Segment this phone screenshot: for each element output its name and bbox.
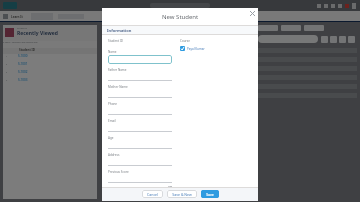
staticText: 1 <box>6 55 8 58</box>
staticText: 9 items • Updated a few seconds ago <box>3 41 38 44</box>
staticText: Information <box>107 28 132 33</box>
button[interactable] <box>108 175 172 183</box>
staticText: 4 <box>6 79 8 82</box>
button[interactable] <box>108 158 172 166</box>
button[interactable] <box>108 107 172 115</box>
staticText: New Student <box>162 13 199 21</box>
button[interactable]: Save <box>201 190 219 198</box>
staticText: Course <box>180 39 190 43</box>
button[interactable] <box>108 55 172 64</box>
staticText: Student ID <box>108 39 124 43</box>
staticText: Student ID <box>19 48 35 52</box>
button[interactable] <box>108 73 172 81</box>
staticText: Name <box>108 50 117 54</box>
button[interactable] <box>108 90 172 98</box>
staticText: Father Name <box>108 68 127 72</box>
staticText: Address <box>108 153 120 157</box>
staticText: Age <box>108 136 114 140</box>
button[interactable] <box>108 124 172 132</box>
staticText: S-1003 <box>18 78 28 82</box>
staticText: Previous Score <box>108 170 129 174</box>
staticText: STUDENTS <box>17 27 27 30</box>
button[interactable]: Close <box>250 11 255 16</box>
button[interactable]: Cancel <box>142 190 163 198</box>
button[interactable] <box>108 141 172 149</box>
staticText: S-1002 <box>18 70 28 74</box>
staticText: Email <box>108 119 116 123</box>
staticText: Learn It <box>11 15 23 19</box>
staticText: Save & New <box>172 192 192 197</box>
staticText: Cancel <box>147 192 158 197</box>
button[interactable]: Payal Kumar <box>180 46 205 51</box>
staticText: Recently Viewed <box>17 30 58 37</box>
staticText: Payal Kumar <box>187 47 205 51</box>
staticText: Phone <box>108 102 118 106</box>
staticText: Save <box>206 192 214 197</box>
staticText: S-1001 <box>18 62 28 66</box>
staticText: S-1000 <box>18 54 28 58</box>
staticText: 2 <box>6 63 8 66</box>
button[interactable]: Save & New <box>167 190 197 198</box>
staticText: Mother Name <box>108 85 128 89</box>
staticText: 3 <box>6 71 8 74</box>
